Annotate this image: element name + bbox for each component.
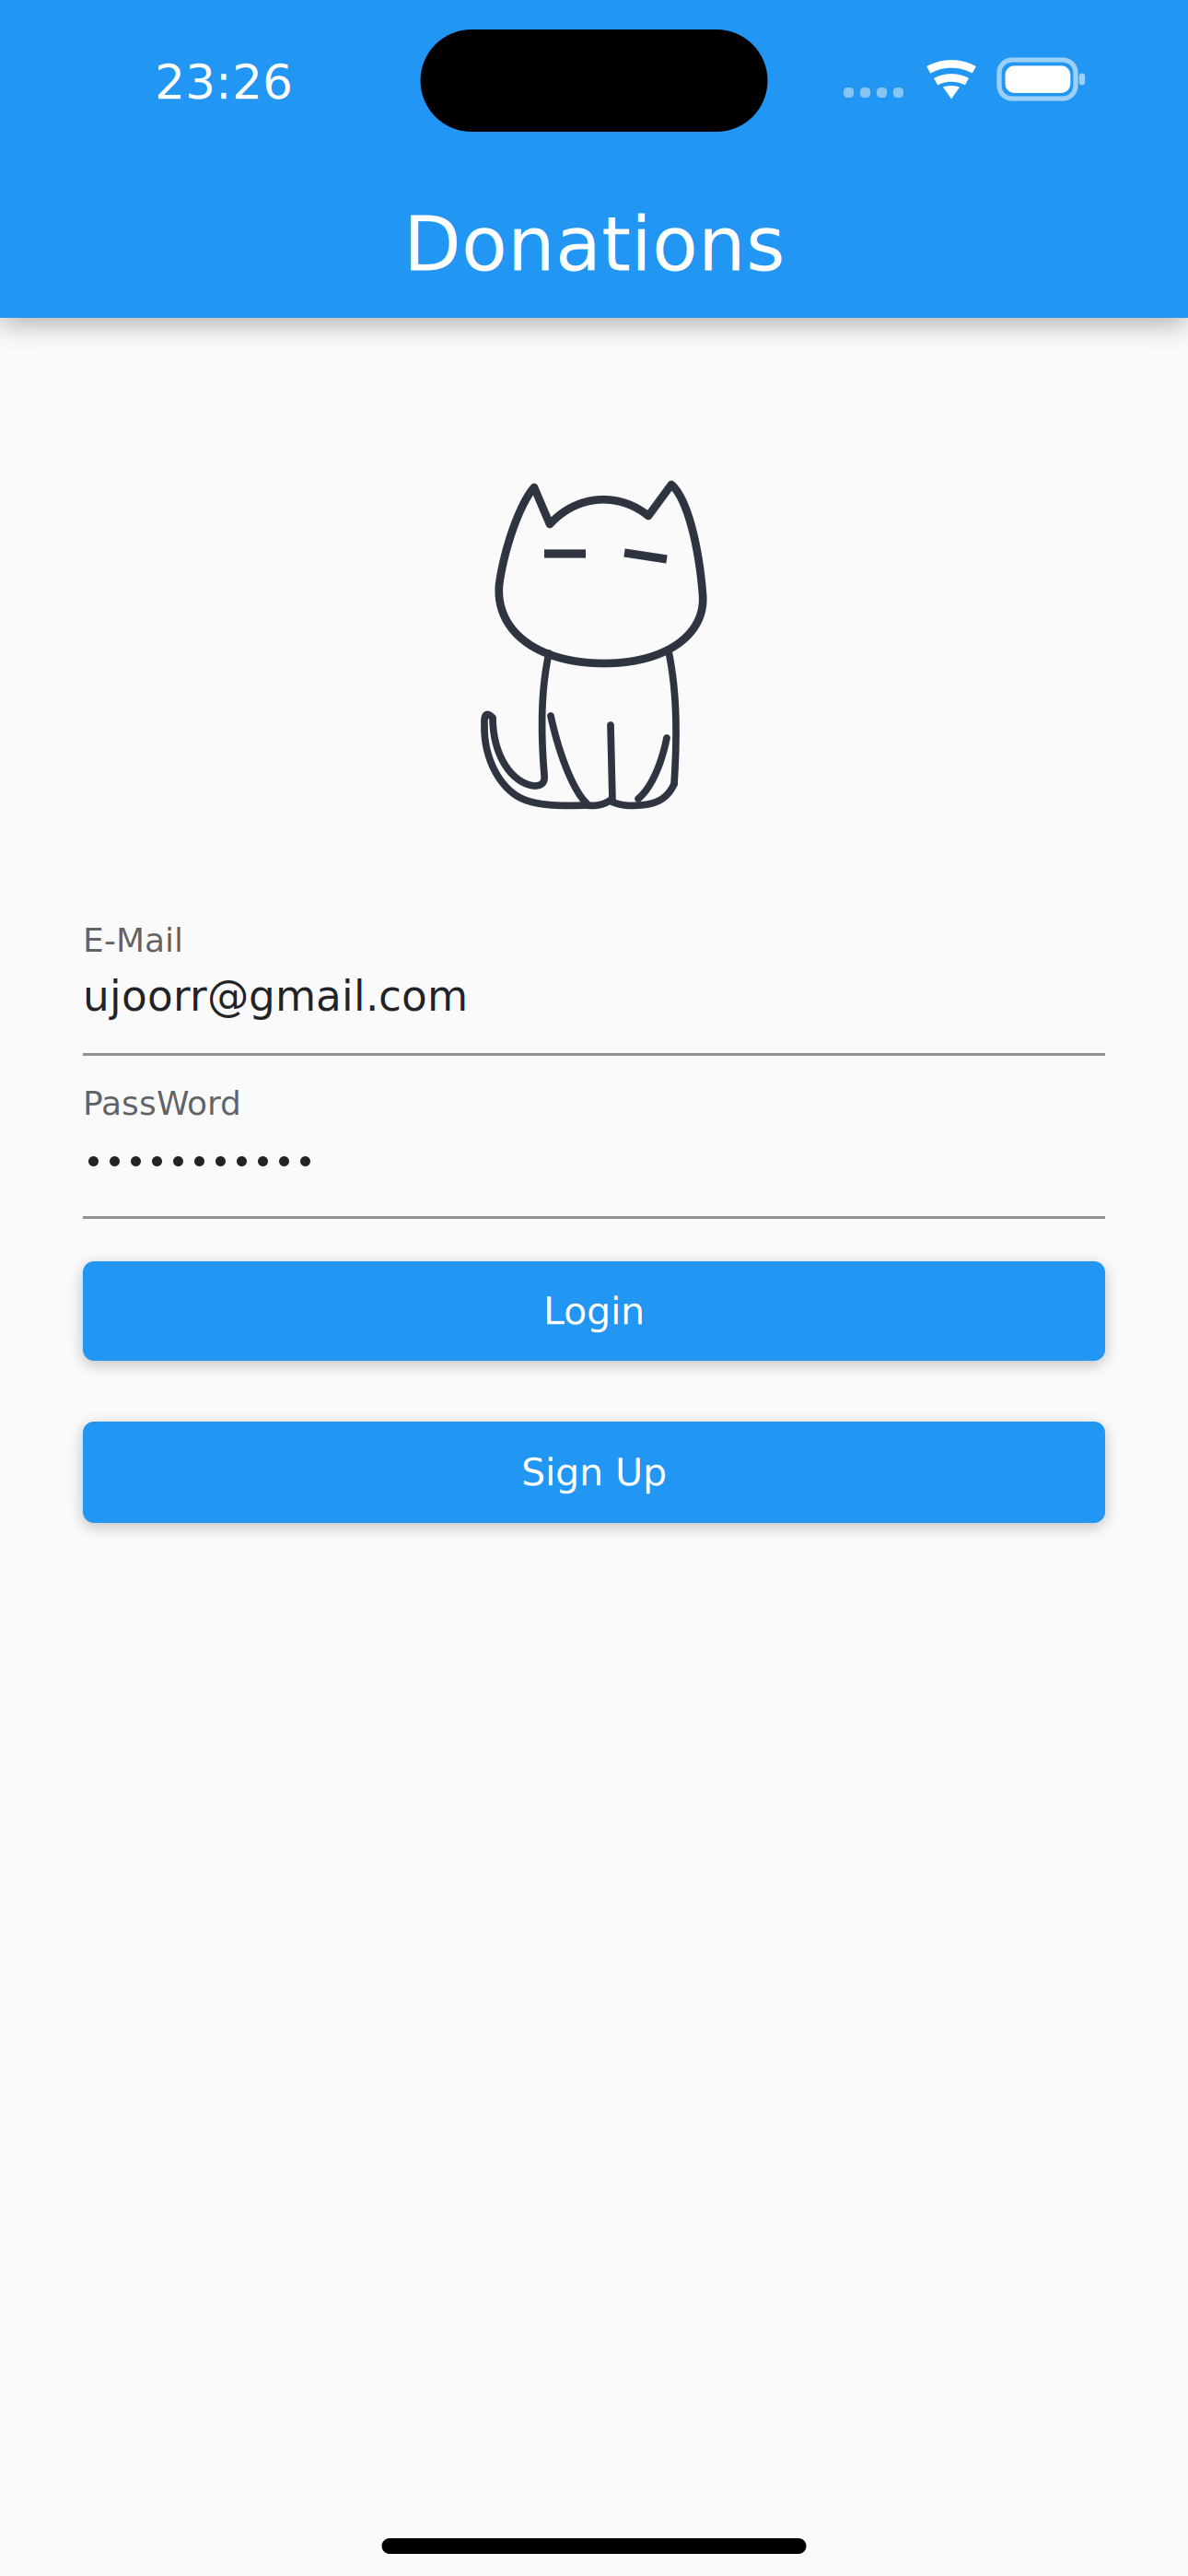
staticText: E-Mail <box>83 921 183 960</box>
button[interactable]: E-Mail <box>83 918 1105 1056</box>
staticText: ujoorr@gmail.com <box>83 972 468 1021</box>
staticText: 23:26 <box>155 54 293 110</box>
button[interactable]: Login <box>83 1261 1105 1361</box>
button[interactable]: PassWord <box>83 1081 1105 1219</box>
staticText: Donations <box>403 201 785 288</box>
staticText: Sign Up <box>521 1450 667 1494</box>
button[interactable]: Sign Up <box>83 1422 1105 1523</box>
staticText: Login <box>543 1289 645 1333</box>
staticText: PassWord <box>83 1084 241 1123</box>
